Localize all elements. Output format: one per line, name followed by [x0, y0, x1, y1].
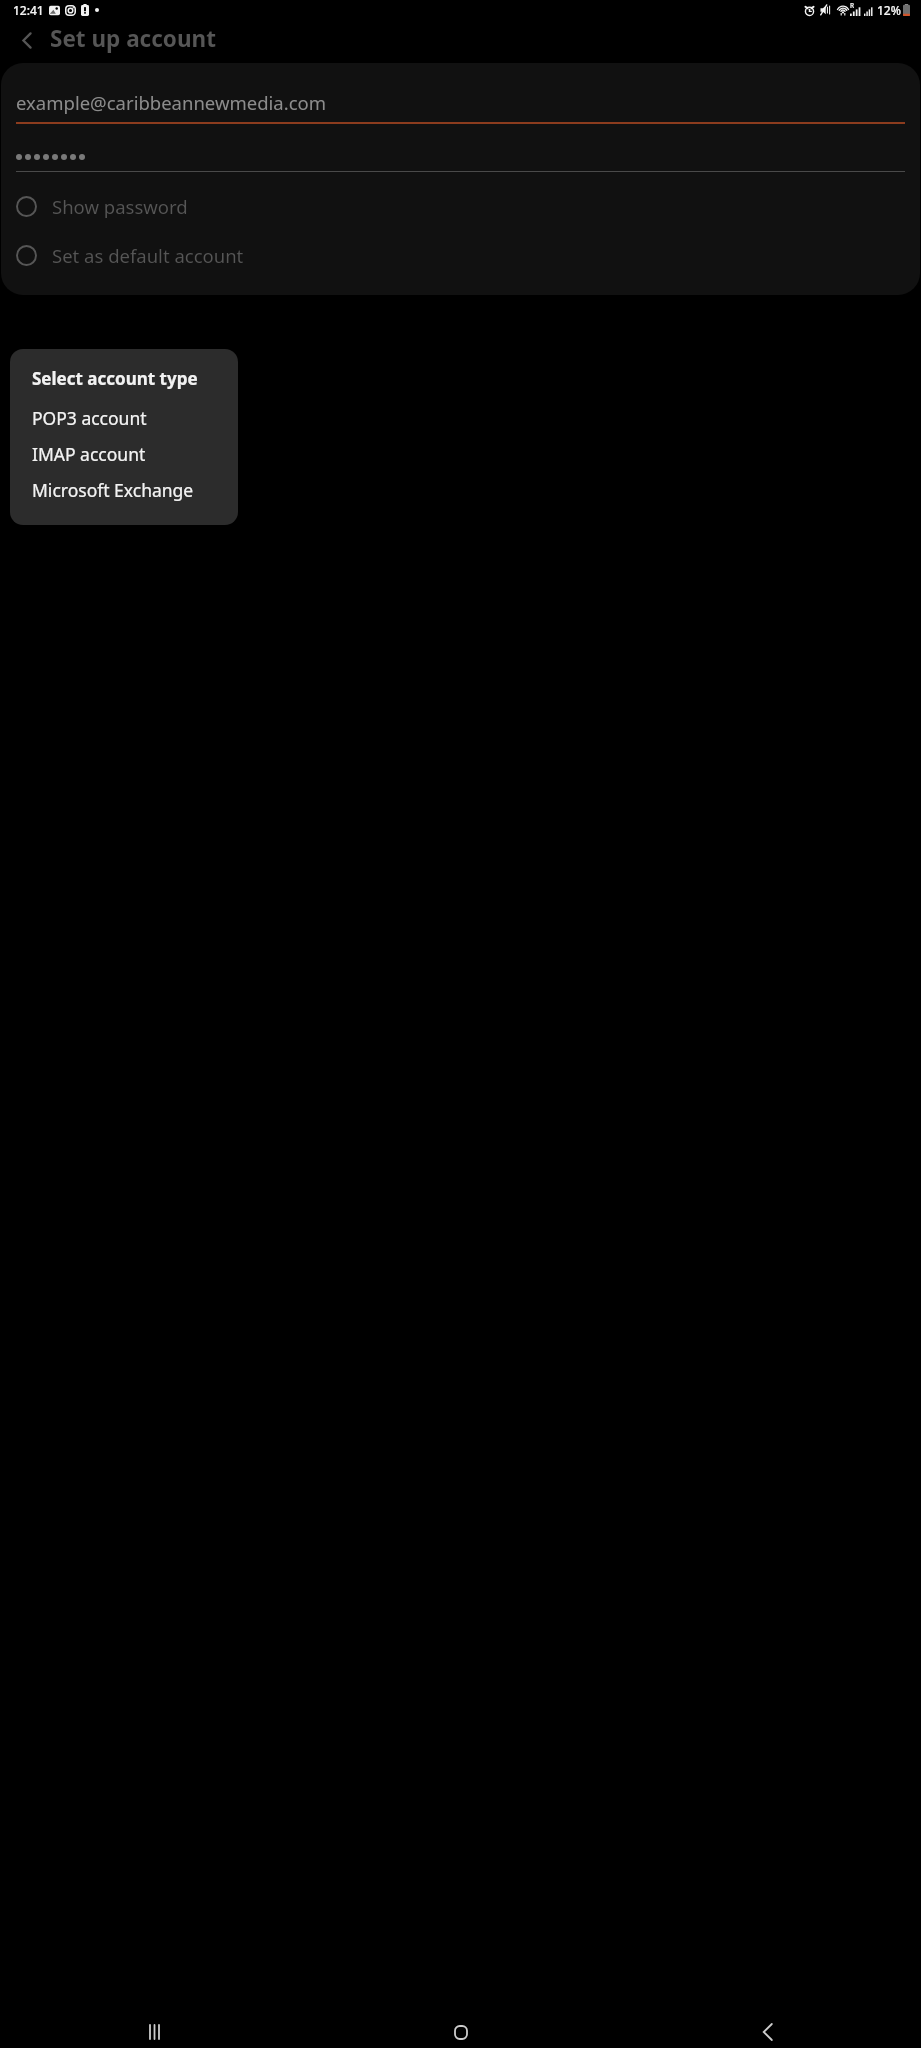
button[interactable]: Back	[729, 2016, 807, 2048]
button[interactable]: Home	[422, 2016, 500, 2048]
staticText: POP3 account	[32, 406, 147, 430]
staticText: example@caribbeannewmedia.com	[16, 90, 327, 115]
staticText: Select account type	[32, 367, 198, 390]
button[interactable]: POP3 account	[10, 400, 238, 436]
button[interactable]: Recent apps	[115, 2016, 193, 2048]
button[interactable]: Set as default account	[16, 237, 905, 273]
staticText: IMAP account	[32, 442, 146, 466]
staticText: R	[850, 1, 855, 10]
staticText: 12:41	[13, 2, 44, 18]
button[interactable]: Navigate up	[8, 21, 46, 59]
staticText: 12%	[877, 2, 901, 18]
staticText: Set as default account	[52, 243, 244, 268]
staticText: Set up account	[50, 23, 216, 54]
staticText: Microsoft Exchange ActiveSync	[32, 478, 238, 502]
staticText: Show password	[52, 194, 188, 219]
button[interactable]: Microsoft Exchange ActiveSync	[10, 472, 238, 508]
button[interactable]: Show password	[16, 188, 905, 224]
button[interactable]: IMAP account	[10, 436, 238, 472]
